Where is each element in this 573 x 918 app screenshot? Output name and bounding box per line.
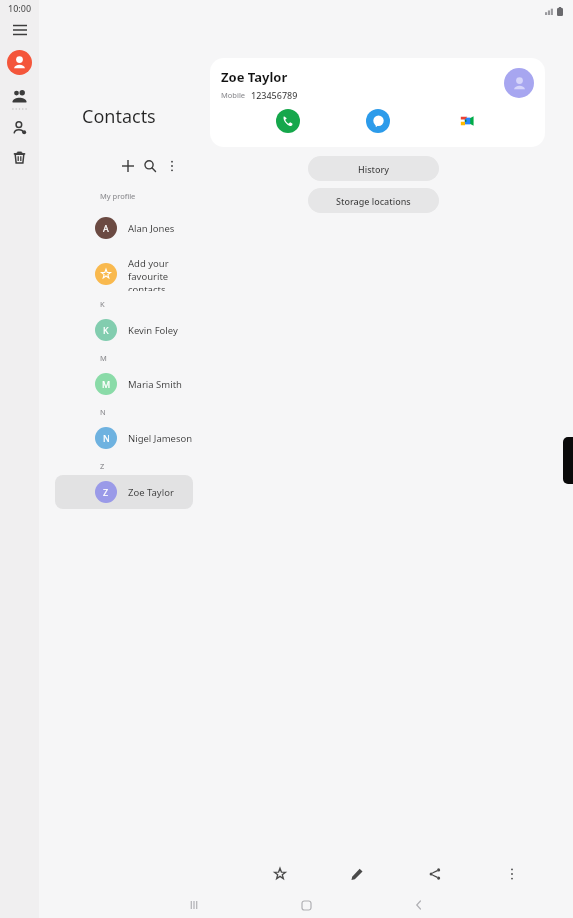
staticText: History <box>358 163 390 175</box>
staticText: A <box>103 222 109 234</box>
staticText: M <box>100 353 107 363</box>
staticText: N <box>100 407 106 417</box>
button[interactable]: Home <box>296 895 316 915</box>
staticText: Zoe Taylor <box>128 486 174 499</box>
staticText: My profile <box>100 191 136 201</box>
button[interactable]: Manage contacts <box>7 115 32 140</box>
button[interactable]: Add contact <box>117 155 139 177</box>
button[interactable]: More <box>481 866 543 888</box>
button[interactable]: Favourites <box>249 866 311 888</box>
staticText: K <box>100 299 105 309</box>
button[interactable]: N <box>55 421 193 455</box>
button[interactable]: Storage locations <box>308 188 439 213</box>
button[interactable]: A <box>55 211 193 245</box>
button[interactable]: Menu <box>7 17 32 42</box>
staticText: Zoe Taylor <box>221 68 288 86</box>
button[interactable]: Groups <box>7 84 32 109</box>
staticText: M <box>102 378 111 390</box>
button[interactable]: Add your favourite <box>95 257 209 291</box>
staticText: 10:00 <box>8 2 32 14</box>
staticText: Z <box>103 486 109 498</box>
staticText: Add your favourite <box>128 257 209 283</box>
button[interactable]: Contacts <box>7 50 32 75</box>
button[interactable]: Share <box>404 866 466 888</box>
button[interactable]: Trash <box>7 145 32 170</box>
button[interactable]: Recents <box>184 895 204 915</box>
button[interactable]: K <box>55 313 193 347</box>
button[interactable]: Search <box>139 155 161 177</box>
staticText: Maria Smith <box>128 378 182 391</box>
button[interactable]: Call <box>276 109 300 133</box>
staticText: Nigel Jameson <box>128 432 193 445</box>
staticText: Mobile <box>221 90 246 100</box>
staticText: K <box>103 324 109 336</box>
button[interactable]: Message <box>366 109 390 133</box>
button[interactable]: Video call <box>455 109 479 133</box>
button[interactable]: Edit <box>326 866 388 888</box>
staticText: Alan Jones <box>128 222 175 235</box>
button[interactable]: Z <box>55 475 193 509</box>
staticText: Contacts <box>82 104 156 129</box>
button[interactable]: Contact photo <box>504 68 534 98</box>
staticText: contacts <box>128 283 166 291</box>
button[interactable]: M <box>55 367 193 401</box>
staticText: Storage locations <box>336 195 411 207</box>
staticText: Kevin Foley <box>128 324 178 337</box>
staticText: 123456789 <box>251 89 298 101</box>
staticText: N <box>103 432 110 444</box>
button[interactable]: Back <box>409 895 429 915</box>
button[interactable]: History <box>308 156 439 181</box>
button[interactable]: More options <box>161 155 183 177</box>
staticText: Z <box>100 461 105 471</box>
